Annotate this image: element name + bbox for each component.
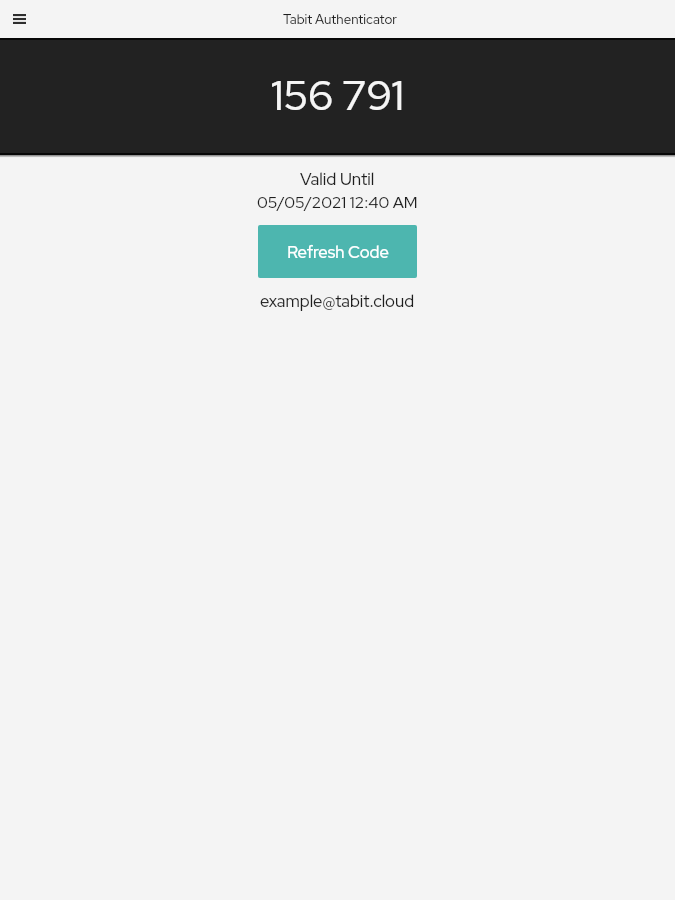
staticText: 05/05/2021 12:40 AM	[257, 192, 418, 213]
button[interactable]: Refresh Code	[258, 225, 417, 278]
staticText: 156 791	[271, 68, 404, 123]
button[interactable]: Open navigation menu	[5, 5, 33, 33]
staticText: Refresh Code	[287, 241, 389, 263]
staticText: Tabit Authenticator	[283, 11, 398, 28]
staticText: example@tabit.cloud	[260, 290, 415, 312]
staticText: Valid Until	[300, 168, 375, 190]
